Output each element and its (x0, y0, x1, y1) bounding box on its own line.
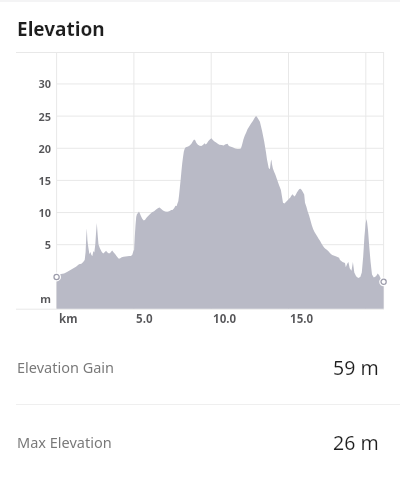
button[interactable]: Elevation Gain (0, 330, 400, 404)
staticText: 26 m (333, 429, 379, 456)
button[interactable]: Max Elevation (0, 405, 400, 478)
staticText: Elevation Gain (17, 357, 115, 377)
staticText: 15 (16, 173, 51, 188)
staticText: 5 (16, 237, 51, 252)
staticText: 30 (16, 76, 51, 91)
staticText: m (16, 291, 51, 306)
staticText: Elevation (17, 16, 105, 42)
staticText: 20 (16, 141, 51, 156)
staticText: 10.0 (213, 311, 237, 327)
staticText: km (59, 311, 78, 327)
staticText: 25 (16, 109, 51, 124)
staticText: Max Elevation (17, 432, 112, 452)
other: Elevation profile chart (0, 0, 400, 478)
staticText: 15.0 (290, 311, 314, 327)
staticText: 59 m (333, 354, 379, 381)
staticText: 10 (16, 205, 51, 220)
staticText: 5.0 (136, 311, 153, 327)
